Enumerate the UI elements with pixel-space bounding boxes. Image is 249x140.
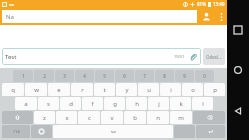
button[interactable]: a <box>15 97 37 110</box>
button[interactable]: s <box>38 97 59 110</box>
button[interactable]: r <box>71 83 93 96</box>
staticText: p <box>213 86 217 94</box>
button[interactable]: m <box>170 111 192 124</box>
staticText: Test <box>5 53 17 61</box>
button[interactable]: Space <box>53 125 173 138</box>
button[interactable]: p <box>204 83 225 96</box>
staticText: 8 <box>163 73 166 79</box>
button[interactable]: 5 <box>95 70 114 82</box>
button[interactable]: 1 <box>13 70 33 82</box>
staticText: s <box>47 100 50 108</box>
button[interactable]: y <box>116 83 137 96</box>
staticText: 150/1 <box>174 54 185 59</box>
button[interactable]: Odesl… <box>203 48 225 65</box>
button[interactable]: Back <box>227 100 249 122</box>
button[interactable]: c <box>78 111 100 124</box>
staticText: 13:49 <box>213 1 225 7</box>
staticText: b <box>133 114 137 122</box>
button[interactable]: 6 <box>115 70 134 82</box>
button[interactable]: q <box>2 83 24 96</box>
button[interactable]: Recent apps <box>227 19 249 41</box>
button[interactable]: n <box>147 111 169 124</box>
staticText: w <box>34 86 39 94</box>
staticText: a <box>24 100 28 108</box>
button[interactable]: 9 <box>175 70 194 82</box>
staticText: k <box>179 100 183 108</box>
staticText: e <box>57 86 61 94</box>
button[interactable]: l <box>192 97 213 110</box>
button[interactable]: z <box>34 111 55 124</box>
button[interactable]: 8 <box>155 70 174 82</box>
staticText: 81% <box>197 1 206 7</box>
button[interactable]: d <box>60 97 81 110</box>
button[interactable]: Na <box>2 10 197 23</box>
button[interactable]: e <box>48 83 70 96</box>
button[interactable]: b <box>124 111 146 124</box>
staticText: n <box>156 114 160 122</box>
staticText: Na <box>6 13 14 21</box>
button[interactable]: 3 <box>55 70 74 82</box>
button[interactable]: k <box>170 97 191 110</box>
staticText: c <box>88 114 91 122</box>
button[interactable]: h <box>126 97 147 110</box>
staticText: y <box>125 86 129 94</box>
button[interactable]: i <box>160 83 181 96</box>
staticText: j <box>158 100 160 108</box>
button[interactable]: x <box>56 111 77 124</box>
button[interactable]: Home <box>227 59 249 81</box>
button[interactable]: Backspace <box>193 111 225 124</box>
button[interactable]: g <box>104 97 125 110</box>
button[interactable]: ?1# <box>2 125 30 138</box>
button[interactable]: Attach <box>188 52 198 62</box>
button[interactable]: Shift <box>2 111 33 124</box>
staticText: h <box>135 100 139 108</box>
staticText: o <box>191 86 195 94</box>
button[interactable]: 0 <box>195 70 214 82</box>
button[interactable]: 7 <box>135 70 154 82</box>
button[interactable]: j <box>148 97 169 110</box>
button[interactable]: Add recipient <box>197 8 215 25</box>
button[interactable]: f <box>82 97 103 110</box>
staticText: 0 <box>203 73 206 79</box>
staticText: 2 <box>43 73 46 79</box>
staticText: z <box>43 114 46 122</box>
button[interactable]: w <box>25 83 47 96</box>
button[interactable]: Test <box>2 48 201 65</box>
button[interactable]: 4 <box>75 70 94 82</box>
staticText: r <box>81 86 84 94</box>
button[interactable]: 2 <box>34 70 54 82</box>
button[interactable]: o <box>182 83 203 96</box>
staticText: g <box>113 100 117 108</box>
staticText: u <box>147 86 151 94</box>
staticText: q <box>11 86 15 94</box>
staticText: i <box>170 86 172 94</box>
staticText: 9 <box>183 73 186 79</box>
staticText: f <box>91 100 94 108</box>
staticText: d <box>69 100 73 108</box>
button[interactable]: More options <box>215 8 227 25</box>
staticText: x <box>65 114 69 122</box>
staticText: ?1# <box>13 129 20 134</box>
staticText: 4 <box>83 73 86 79</box>
button[interactable]: v <box>101 111 123 124</box>
staticText: 1 <box>22 73 25 79</box>
button[interactable]: Settings <box>31 125 52 138</box>
staticText: v <box>110 114 114 122</box>
staticText: Odesl… <box>206 54 222 60</box>
staticText: m <box>178 114 184 122</box>
button[interactable]: t <box>94 83 115 96</box>
staticText: t <box>103 86 106 94</box>
staticText: 6 <box>123 73 126 79</box>
staticText: 5 <box>103 73 106 79</box>
staticText: 3 <box>63 73 66 79</box>
staticText: 7 <box>143 73 146 79</box>
button[interactable]: Enter <box>196 125 225 138</box>
button[interactable]: u <box>138 83 159 96</box>
staticText: l <box>202 100 204 108</box>
